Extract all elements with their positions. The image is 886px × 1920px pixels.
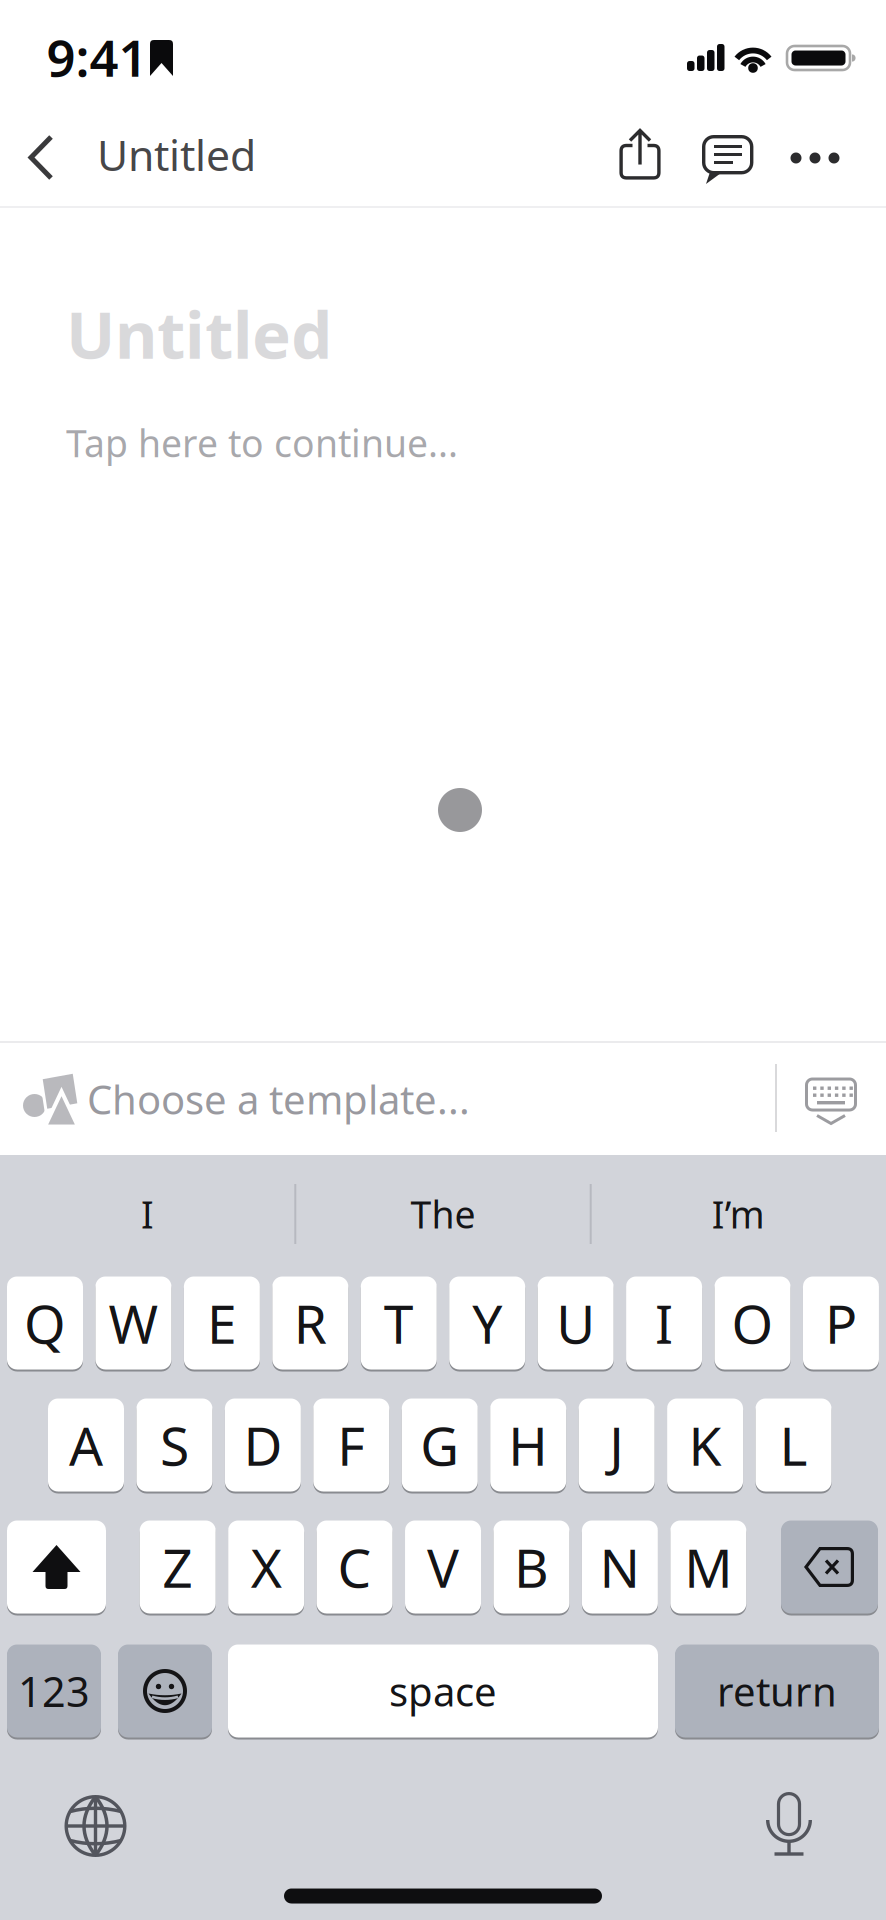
staticText: B [514,1532,549,1602]
button[interactable]: The [298,1164,588,1264]
button[interactable]: Q [7,1275,83,1370]
staticText: I’m [712,1189,765,1239]
button[interactable]: A [48,1397,124,1492]
staticText: R [294,1288,327,1358]
staticText: W [108,1288,158,1358]
button[interactable]: Share [611,120,668,187]
button[interactable]: V [405,1519,481,1614]
staticText: Choose a template... [87,1072,470,1125]
button[interactable]: Y [449,1275,525,1370]
button[interactable]: C [317,1519,393,1614]
button[interactable]: K [667,1397,743,1492]
staticText: J [609,1410,624,1480]
button[interactable]: U [538,1275,614,1370]
button[interactable]: Choose a template [2,1043,762,1155]
button[interactable]: E [184,1275,260,1370]
button[interactable]: 123 [7,1643,101,1738]
staticText: T [384,1288,414,1358]
staticText: Y [472,1288,502,1358]
button[interactable]: Comments [694,127,762,193]
button[interactable]: O [714,1275,790,1370]
staticText: C [338,1532,372,1602]
staticText: L [779,1410,807,1480]
button[interactable]: G [402,1397,478,1492]
button[interactable]: I [626,1275,702,1370]
button[interactable]: Next keyboard [50,1781,140,1871]
button[interactable]: P [803,1275,879,1370]
button[interactable]: J [579,1397,655,1492]
staticText: E [207,1288,237,1358]
staticText: U [556,1288,595,1358]
button[interactable]: return [675,1643,879,1738]
staticText: N [599,1532,640,1602]
staticText: Z [162,1532,193,1602]
staticText: space [389,1664,497,1717]
button[interactable]: H [490,1397,566,1492]
button[interactable]: I [3,1164,293,1264]
staticText: The [410,1189,475,1239]
button[interactable]: W [95,1275,171,1370]
staticText: 123 [18,1664,90,1718]
staticText: S [160,1410,189,1480]
button[interactable]: N [582,1519,658,1614]
staticText: Tap here to continue... [66,418,458,468]
button[interactable]: space [228,1643,658,1738]
staticText: P [825,1288,857,1358]
button[interactable]: Z [140,1519,216,1614]
staticText: X [251,1532,282,1602]
staticText: D [243,1410,282,1480]
staticText: M [684,1532,732,1602]
button[interactable]: Back [20,126,62,189]
button[interactable]: S [136,1397,212,1492]
button[interactable]: L [755,1397,831,1492]
staticText: I [655,1288,673,1358]
staticText: G [420,1410,459,1480]
button[interactable]: Dictate [752,1778,825,1870]
staticText: V [427,1532,459,1602]
button[interactable]: Shift [7,1519,106,1614]
staticText: 9:41 [46,23,147,91]
button[interactable]: D [225,1397,301,1492]
button[interactable]: I’m [593,1164,883,1264]
button[interactable]: T [361,1275,437,1370]
button[interactable]: M [670,1519,746,1614]
button[interactable]: F [313,1397,389,1492]
button[interactable]: B [493,1519,569,1614]
button[interactable]: X [228,1519,304,1614]
staticText: H [508,1410,548,1480]
button[interactable]: R [272,1275,348,1370]
staticText: return [717,1664,837,1717]
staticText: F [337,1410,365,1480]
staticText: I [141,1189,154,1239]
button[interactable]: Delete [781,1519,878,1614]
staticText: Untitled [97,126,256,183]
staticText: Q [24,1288,66,1358]
staticText: O [731,1288,773,1358]
staticText: A [69,1410,103,1480]
staticText: K [689,1410,722,1480]
button[interactable]: More [778,140,851,175]
button[interactable]: Emoji [118,1643,212,1738]
button[interactable]: Dismiss keyboard [791,1063,871,1138]
staticText: Untitled [66,290,332,377]
